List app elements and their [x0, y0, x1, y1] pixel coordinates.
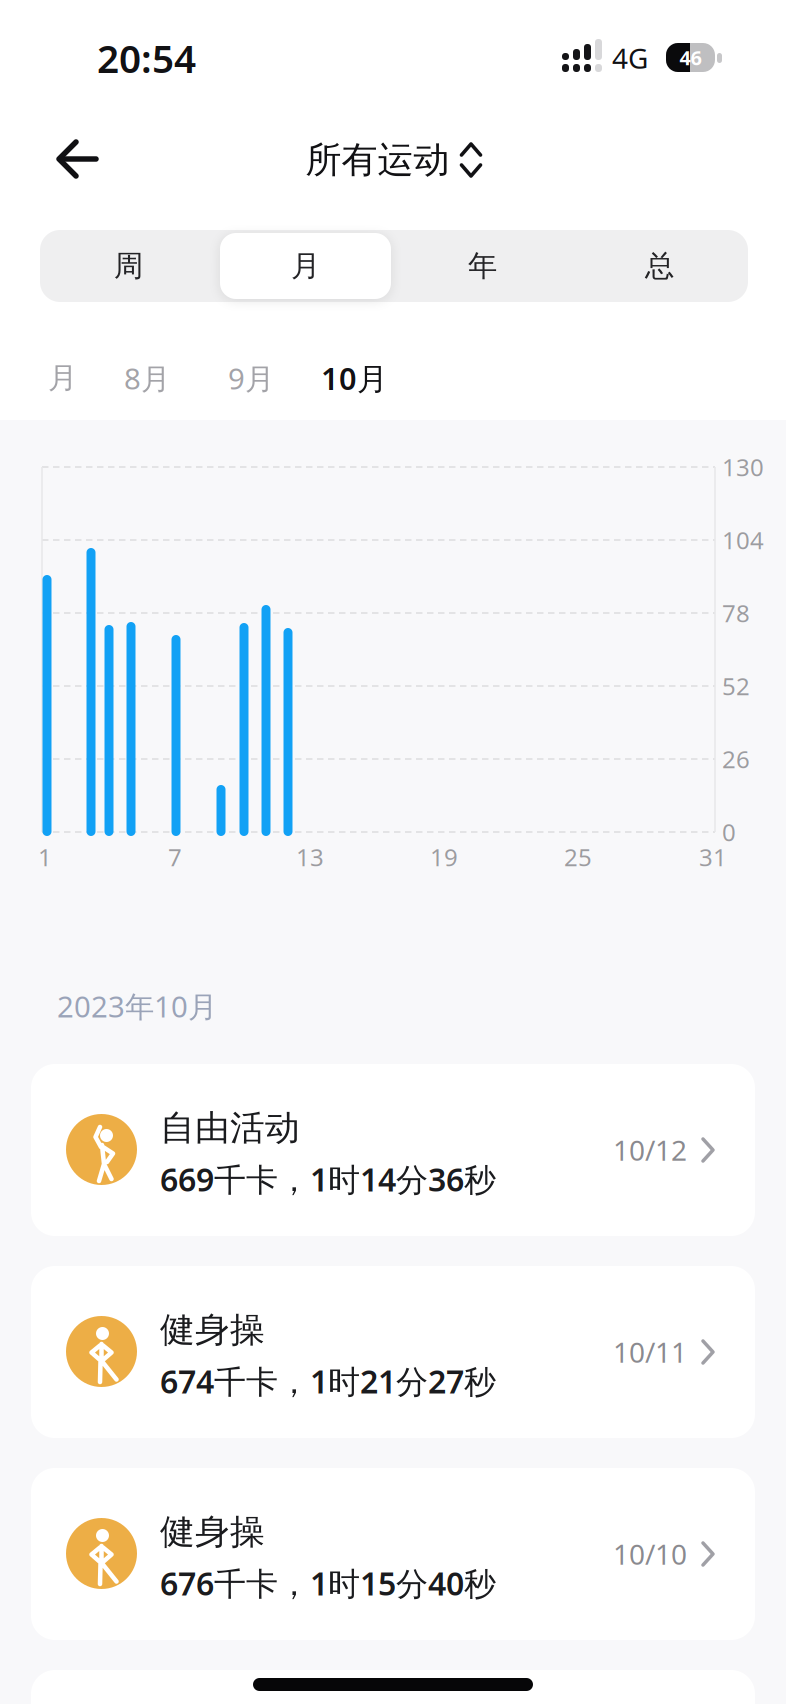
staticText: 自由活动 [160, 1107, 300, 1149]
staticText: 10/10 [613, 1535, 687, 1573]
staticText: 所有运动 [305, 138, 449, 182]
staticText: 健身操 [160, 1309, 265, 1351]
staticText: 19 [430, 841, 458, 873]
staticText: 1 [38, 841, 52, 873]
staticText: 20:54 [97, 32, 196, 84]
button[interactable]: 9月 [228, 358, 274, 397]
staticText: 7 [168, 841, 182, 873]
staticText: 9月 [228, 358, 274, 397]
staticText: 0 [722, 816, 736, 848]
button[interactable]: 周 [40, 230, 217, 302]
button[interactable]: 总 [571, 230, 748, 302]
staticText: 13 [296, 841, 324, 873]
staticText: 31 [699, 841, 727, 873]
button[interactable]: 健身操 [31, 1468, 755, 1640]
staticText: 4G [612, 39, 648, 77]
button[interactable]: 10月 [321, 358, 388, 398]
staticText: 总 [645, 248, 674, 284]
staticText: 8月 [124, 358, 170, 397]
staticText: 月 [291, 248, 320, 284]
staticText: 669千卡，1时14分36秒 [160, 1158, 496, 1200]
staticText: 2023年10月 [57, 986, 217, 1025]
staticText: 周 [114, 248, 143, 284]
staticText: 130 [722, 451, 764, 483]
button[interactable]: Back [40, 128, 120, 192]
button[interactable]: 年 [394, 230, 571, 302]
staticText: 25 [564, 841, 592, 873]
button[interactable]: 自由活动 [31, 1064, 755, 1236]
staticText: 676千卡，1时15分40秒 [160, 1562, 496, 1604]
staticText: 10/12 [613, 1131, 687, 1169]
staticText: 78 [722, 597, 750, 629]
staticText: 104 [722, 524, 764, 556]
staticText: 10月 [321, 358, 388, 398]
staticText: 10/11 [613, 1333, 687, 1371]
button[interactable]: 月 [48, 360, 77, 396]
staticText: 674千卡，1时21分27秒 [160, 1360, 496, 1402]
button[interactable]: 所有运动 [305, 138, 480, 182]
button[interactable]: 健身操 [31, 1266, 755, 1438]
staticText: 月 [48, 360, 77, 396]
staticText: 46 [679, 44, 701, 71]
staticText: 健身操 [160, 1511, 265, 1553]
staticText: 年 [468, 248, 497, 284]
staticText: 26 [722, 743, 750, 775]
button[interactable]: 8月 [124, 358, 170, 397]
staticText: 52 [722, 670, 750, 702]
button[interactable]: 月 [217, 230, 394, 302]
